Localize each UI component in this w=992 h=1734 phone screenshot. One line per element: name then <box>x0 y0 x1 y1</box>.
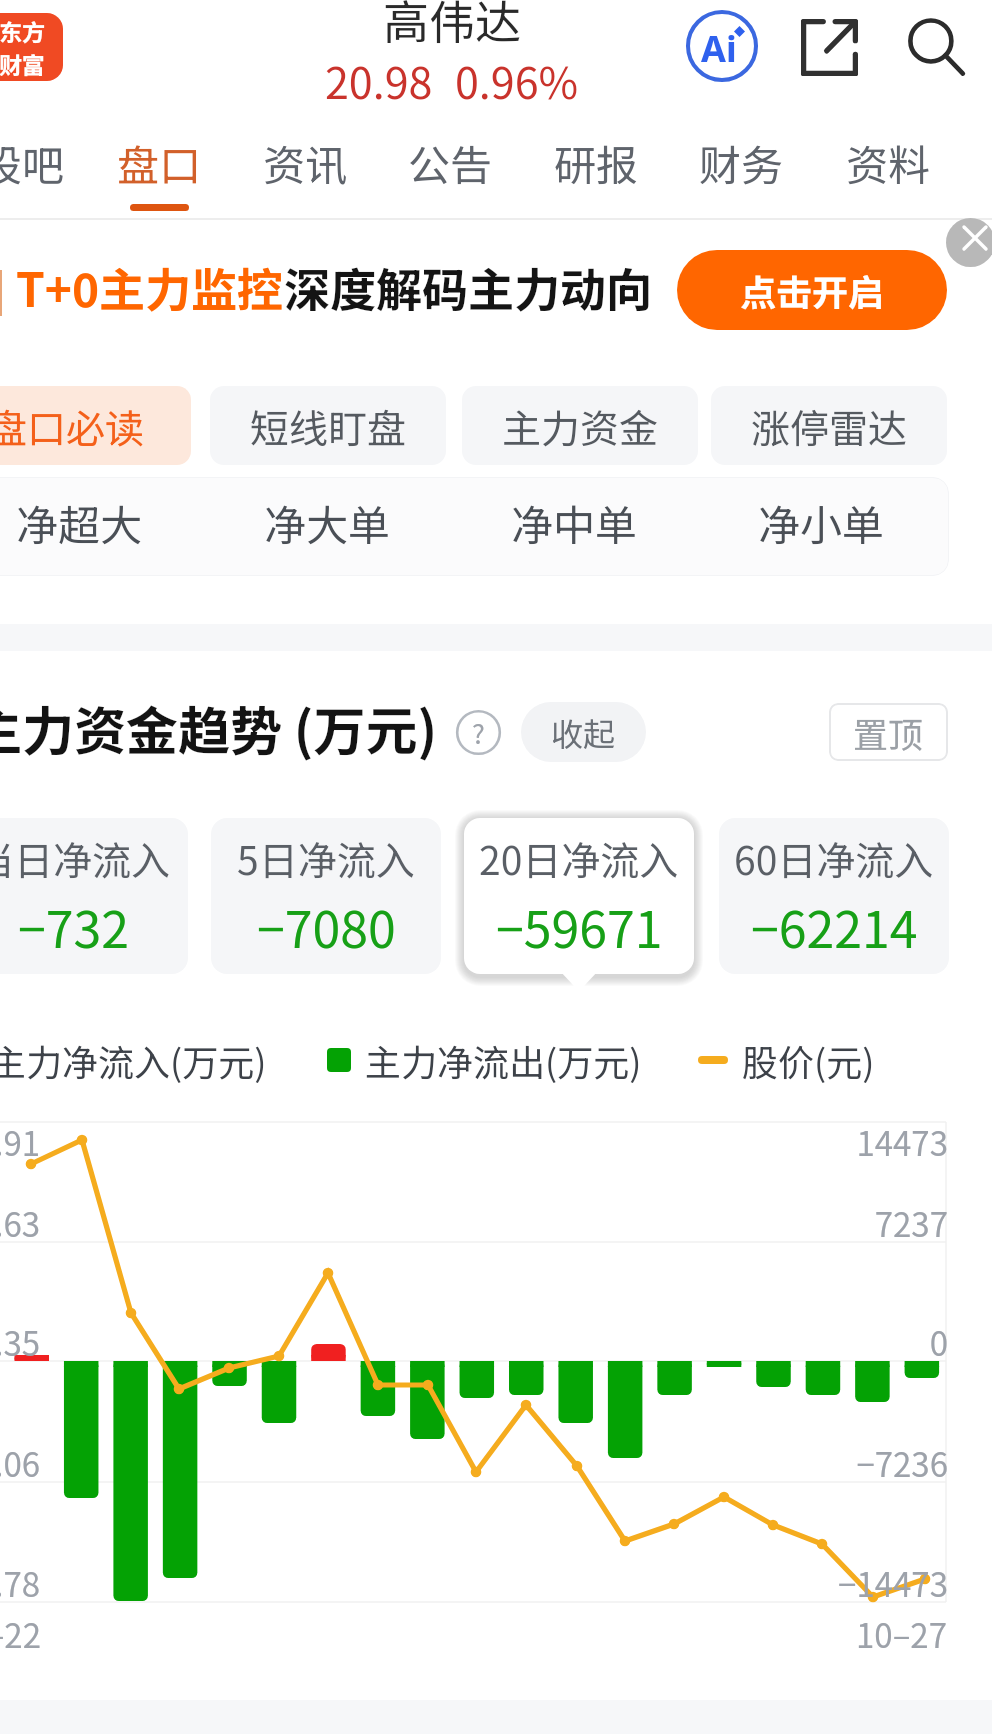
staticText: 5日净流入 <box>237 830 415 886</box>
staticText: −59671 <box>496 890 663 962</box>
staticText: 东方 <box>0 14 45 47</box>
button[interactable]: 说明 <box>456 710 501 755</box>
button[interactable]: 净小单 <box>711 477 931 567</box>
button[interactable]: 搜索 <box>900 12 972 84</box>
staticText: 当日净流入 <box>0 830 171 886</box>
staticText: 短线盯盘 <box>250 398 407 454</box>
staticText: 置顶 <box>853 707 924 758</box>
staticText: −7236 <box>0 1439 948 1487</box>
staticText: 财务 <box>699 132 784 193</box>
button[interactable]: 短线盯盘 <box>210 386 446 465</box>
button[interactable]: 股吧 <box>0 108 88 216</box>
staticText: 1.91 <box>0 1118 41 1166</box>
staticText: 资料 <box>846 132 931 193</box>
staticText: 主力净流出(万元) <box>365 1034 642 1086</box>
button[interactable]: 收起 <box>521 702 646 762</box>
staticText: −732 <box>18 890 129 962</box>
staticText: 1.06 <box>0 1439 41 1487</box>
staticText: 14473 <box>0 1118 948 1166</box>
staticText: −62214 <box>751 890 918 962</box>
button[interactable]: 盘口 <box>93 108 225 216</box>
button[interactable]: 5日净流入 <box>211 818 441 974</box>
staticText: 主力资金 <box>502 398 659 454</box>
staticText: 1.63 <box>0 1199 41 1247</box>
staticText: 研报 <box>554 132 639 193</box>
button[interactable]: 点击开启 <box>677 250 947 330</box>
staticText: 收起 <box>551 709 616 755</box>
button[interactable]: 60日净流入 <box>719 818 949 974</box>
button[interactable]: 资讯 <box>239 108 371 216</box>
staticText: 高伟达 <box>383 0 521 53</box>
button[interactable]: 置顶 <box>829 703 948 761</box>
staticText: 20.98 <box>325 49 433 111</box>
button[interactable]: 公告 <box>384 108 516 216</box>
staticText: 主力净流入(万元) <box>0 1034 267 1086</box>
button[interactable]: 资料 <box>822 108 954 216</box>
staticText: 股价(元) <box>742 1034 875 1086</box>
staticText: 净大单 <box>264 492 391 553</box>
button[interactable]: 涨停雷达 <box>711 386 947 465</box>
staticText: 0.96% <box>455 49 579 111</box>
staticText: 公告 <box>408 132 493 193</box>
button[interactable]: 盘口必读 <box>0 386 191 465</box>
button[interactable]: 净大单 <box>217 477 437 567</box>
button[interactable]: 净超大 <box>0 477 189 567</box>
staticText: 净超大 <box>16 492 143 553</box>
staticText: 涨停雷达 <box>751 398 908 454</box>
button[interactable]: 当日净流入 <box>0 818 188 974</box>
button[interactable]: 东方财富 <box>0 13 63 81</box>
button[interactable]: 财务 <box>675 108 807 216</box>
staticText: 财富 <box>0 47 45 80</box>
staticText: 股吧 <box>0 132 65 193</box>
staticText: 资讯 <box>263 132 348 193</box>
staticText: 0.78 <box>0 1559 41 1607</box>
button[interactable]: 主力资金 <box>462 386 698 465</box>
button[interactable]: AI 助手 <box>686 10 758 82</box>
staticText: 60日净流入 <box>734 830 934 886</box>
staticText: −7080 <box>257 890 396 962</box>
staticText: 20日净流入 <box>479 830 679 886</box>
staticText: 10–22 <box>0 1610 41 1658</box>
staticText: 1.35 <box>0 1318 41 1366</box>
staticText: 主力资金趋势 (万元) <box>0 690 438 765</box>
staticText: 10–27 <box>0 1610 947 1658</box>
button[interactable]: 关闭 <box>946 218 992 267</box>
staticText: 7237 <box>0 1199 948 1247</box>
staticText: 净中单 <box>511 492 638 553</box>
staticText: 盘口必读 <box>0 398 145 454</box>
staticText: −14473 <box>0 1559 948 1607</box>
staticText: Ai <box>701 24 737 73</box>
staticText: 深度解码主力动向 <box>284 254 652 321</box>
staticText: 0 <box>0 1318 948 1366</box>
button[interactable]: 20日净流入 <box>464 818 694 974</box>
button[interactable]: 分享 <box>789 7 869 87</box>
staticText: 点击开启 <box>740 264 885 316</box>
staticText: 盘口 <box>117 132 202 193</box>
staticText: T+0主力监控 <box>16 254 284 321</box>
button[interactable]: 研报 <box>530 108 662 216</box>
staticText: 净小单 <box>758 492 885 553</box>
button[interactable]: 净中单 <box>464 477 684 567</box>
staticText: ? <box>472 713 485 752</box>
